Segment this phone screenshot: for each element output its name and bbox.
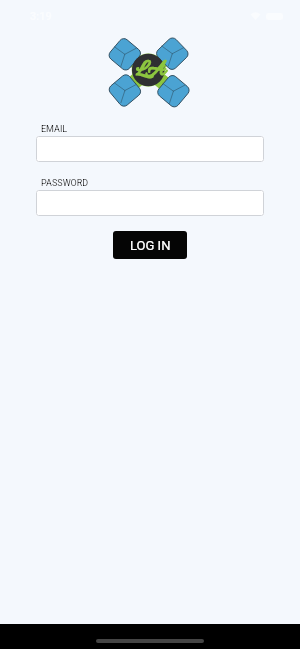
staticText: LOG IN bbox=[130, 238, 171, 253]
staticText: LA bbox=[136, 57, 165, 86]
staticText: EMAIL bbox=[41, 124, 68, 135]
staticText: PASSWORD bbox=[41, 178, 89, 189]
button[interactable] bbox=[36, 136, 264, 162]
button[interactable]: LOG IN bbox=[113, 231, 187, 259]
button[interactable] bbox=[36, 190, 264, 216]
